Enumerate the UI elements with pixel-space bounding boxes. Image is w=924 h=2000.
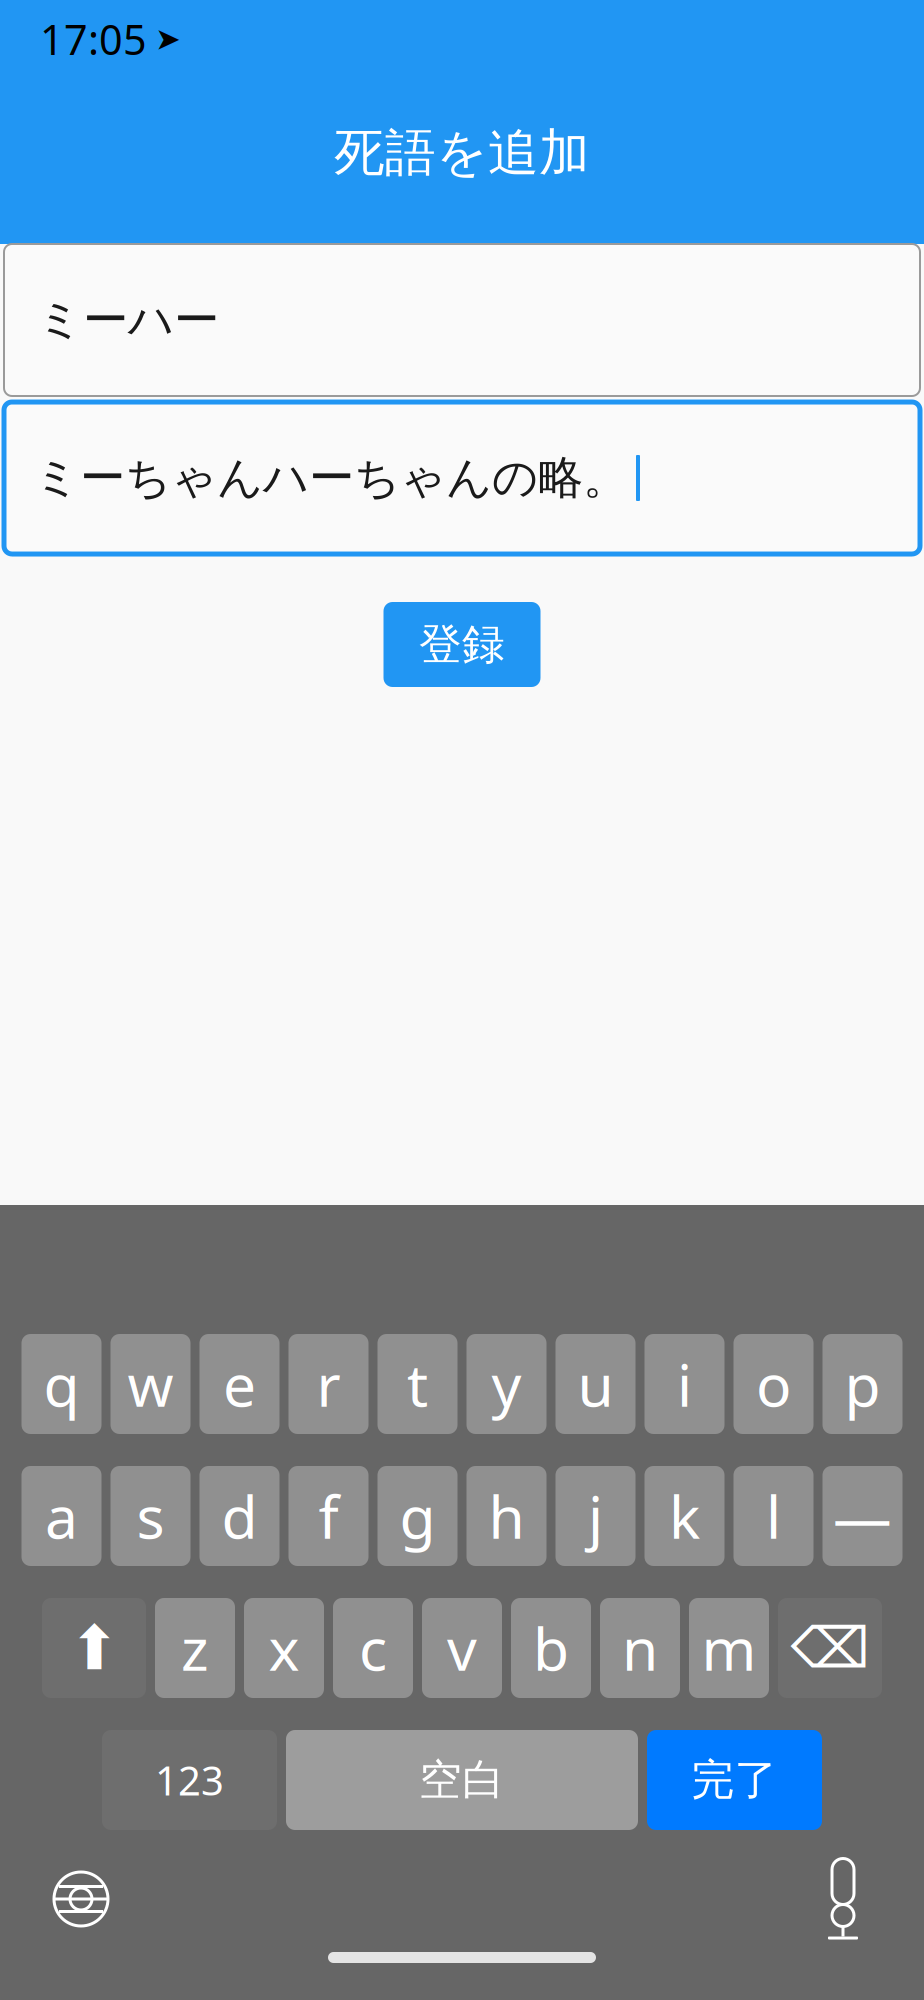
staticText: a — [45, 1477, 78, 1555]
button[interactable]: m — [689, 1598, 769, 1698]
button[interactable]: i — [644, 1334, 724, 1434]
staticText: ミーちゃんハーちゃんの略。 — [34, 450, 628, 506]
staticText: 完了 — [691, 1754, 777, 1806]
button[interactable]: Shift — [42, 1598, 146, 1698]
staticText: 17:05 — [40, 12, 147, 66]
button[interactable]: s — [110, 1466, 190, 1566]
staticText: 死語を追加 — [334, 122, 590, 184]
staticText: t — [407, 1345, 428, 1423]
staticText: g — [399, 1477, 435, 1555]
staticText: x — [268, 1609, 299, 1687]
button[interactable]: 完了 — [647, 1730, 822, 1830]
staticText: 登録 — [419, 618, 505, 671]
button[interactable]: 空白 — [286, 1730, 638, 1830]
staticText: 123 — [155, 1753, 224, 1806]
staticText: m — [701, 1609, 756, 1687]
button[interactable]: t — [377, 1334, 457, 1434]
button[interactable]: u — [555, 1334, 635, 1434]
button[interactable]: g — [377, 1466, 457, 1566]
staticText: f — [318, 1477, 338, 1555]
staticText: j — [588, 1477, 603, 1555]
staticText: v — [447, 1609, 477, 1687]
staticText: d — [221, 1477, 257, 1555]
button[interactable]: Delete — [778, 1598, 882, 1698]
button[interactable]: k — [644, 1466, 724, 1566]
button[interactable]: 登録 — [383, 602, 540, 687]
button[interactable]: Next keyboard — [42, 1860, 120, 1938]
staticText: r — [316, 1345, 340, 1423]
staticText: l — [766, 1477, 781, 1555]
button[interactable]: ミーハー — [4, 244, 920, 396]
button[interactable]: y — [466, 1334, 546, 1434]
button[interactable]: x — [244, 1598, 324, 1698]
staticText: z — [181, 1609, 209, 1687]
staticText: y — [491, 1345, 521, 1423]
button[interactable]: b — [511, 1598, 591, 1698]
staticText: h — [488, 1477, 524, 1555]
button[interactable]: d — [199, 1466, 279, 1566]
staticText: 空白 — [419, 1754, 505, 1806]
staticText: q — [43, 1345, 79, 1423]
staticText: k — [669, 1477, 700, 1555]
button[interactable]: c — [333, 1598, 413, 1698]
button[interactable]: f — [288, 1466, 368, 1566]
staticText: c — [359, 1609, 387, 1687]
staticText: ➤ — [155, 22, 181, 56]
staticText: w — [127, 1345, 173, 1423]
button[interactable]: n — [600, 1598, 680, 1698]
button[interactable]: — — [822, 1466, 902, 1566]
staticText: b — [533, 1609, 569, 1687]
staticText: — — [833, 1477, 892, 1555]
staticText: p — [844, 1345, 880, 1423]
staticText: ⬆ — [68, 1613, 119, 1683]
staticText: u — [577, 1345, 613, 1423]
button[interactable]: r — [288, 1334, 368, 1434]
staticText: i — [677, 1345, 692, 1423]
button[interactable]: 123 — [102, 1730, 277, 1830]
button[interactable]: ミーちゃんハーちゃんの略。 — [4, 402, 920, 554]
button[interactable]: w — [110, 1334, 190, 1434]
staticText: s — [136, 1477, 164, 1555]
staticText: e — [223, 1345, 256, 1423]
button[interactable]: a — [21, 1466, 101, 1566]
button[interactable]: Dictation — [804, 1860, 882, 1938]
staticText: o — [756, 1345, 791, 1423]
button[interactable]: z — [155, 1598, 235, 1698]
staticText: n — [622, 1609, 658, 1687]
button[interactable]: j — [555, 1466, 635, 1566]
staticText: ⌫ — [790, 1616, 869, 1680]
button[interactable]: q — [21, 1334, 101, 1434]
button[interactable]: p — [822, 1334, 902, 1434]
staticText: ミーハー — [37, 292, 219, 348]
button[interactable]: o — [733, 1334, 813, 1434]
button[interactable]: e — [199, 1334, 279, 1434]
button[interactable]: l — [733, 1466, 813, 1566]
button[interactable]: h — [466, 1466, 546, 1566]
button[interactable]: v — [422, 1598, 502, 1698]
